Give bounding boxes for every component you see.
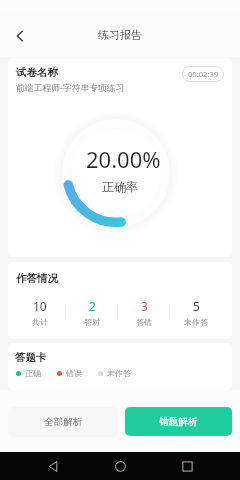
button[interactable]: 3 — [118, 298, 170, 327]
button[interactable]: 未作答 — [98, 368, 131, 378]
staticText: 答错 — [136, 317, 152, 327]
button[interactable]: 正确 — [16, 368, 41, 378]
button[interactable]: 2 — [66, 298, 118, 327]
button[interactable]: 00:02:39 — [182, 66, 224, 82]
staticText: 错误 — [66, 368, 82, 378]
staticText: 10 — [33, 298, 47, 314]
staticText: 试卷名称 — [16, 66, 58, 79]
staticText: 00:02:39 — [188, 69, 219, 79]
staticText: 错题解析 — [159, 416, 198, 428]
staticText: 2 — [89, 298, 96, 314]
button[interactable]: Home — [108, 454, 132, 478]
staticText: 练习报告 — [98, 28, 142, 42]
staticText: 答对 — [84, 317, 100, 327]
button[interactable]: 5 — [170, 298, 222, 327]
button[interactable]: 全部解析 — [8, 407, 118, 437]
staticText: 共计 — [32, 317, 48, 327]
staticText: 未作答 — [184, 317, 208, 327]
staticText: 作答情况 — [16, 272, 58, 285]
button[interactable]: 错题解析 — [125, 407, 232, 436]
staticText: 20.00% — [86, 144, 161, 174]
button[interactable]: Recent apps — [175, 454, 199, 478]
staticText: 答题卡 — [15, 351, 47, 364]
staticText: 未作答 — [107, 368, 131, 378]
button[interactable]: 10 — [14, 298, 66, 327]
staticText: 正确率 — [102, 179, 138, 194]
button[interactable]: Back — [41, 454, 65, 478]
staticText: 正确 — [25, 368, 41, 378]
button[interactable]: Back — [8, 24, 32, 48]
button[interactable]: 错误 — [57, 368, 82, 378]
staticText: 全部解析 — [44, 416, 83, 428]
staticText: 3 — [141, 298, 148, 314]
staticText: 前端工程师-字符串专项练习 — [16, 82, 125, 94]
staticText: 5 — [193, 298, 200, 314]
